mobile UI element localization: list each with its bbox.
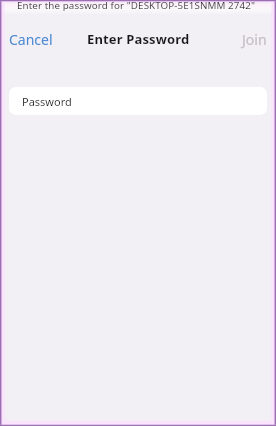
staticText: Join [242, 30, 267, 49]
staticText: Enter the password for "DESKTOP-5E1SNMM … [17, 0, 255, 12]
button[interactable]: Cancel [0, 25, 58, 54]
staticText: Cancel [9, 30, 53, 49]
button[interactable]: Join [233, 25, 276, 54]
staticText: Enter Password [87, 30, 190, 48]
button[interactable]: Password [9, 87, 267, 115]
staticText: Password [22, 94, 72, 109]
